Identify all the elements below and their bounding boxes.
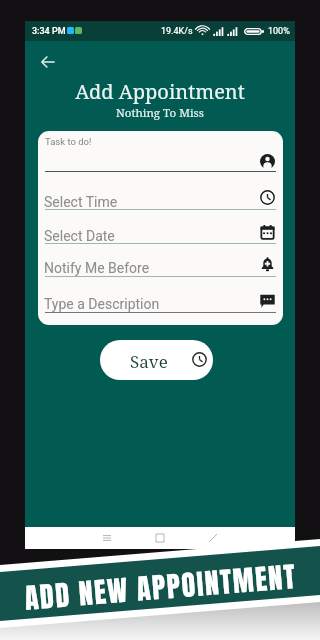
button[interactable]: Back bbox=[33, 47, 63, 77]
button[interactable]: Back bbox=[205, 530, 221, 546]
button[interactable]: Select time bbox=[258, 188, 276, 206]
staticText: Save bbox=[130, 350, 168, 373]
staticText: 3:34 PM bbox=[32, 26, 66, 37]
button[interactable]: Notify Me Before bbox=[44, 259, 249, 277]
button[interactable]: Description bbox=[258, 291, 276, 309]
staticText: ADD NEW APPOINTMENT bbox=[23, 555, 298, 617]
button[interactable]: Select Date bbox=[44, 227, 249, 245]
button[interactable]: Notify me bbox=[258, 255, 276, 273]
button[interactable]: Recents bbox=[99, 530, 115, 546]
button[interactable]: Select date bbox=[258, 223, 276, 241]
staticText: Select Time bbox=[44, 194, 118, 210]
button[interactable]: Save bbox=[100, 340, 213, 380]
staticText: Notify Me Before bbox=[44, 260, 150, 276]
staticText: 19.4K/s bbox=[161, 26, 193, 37]
button[interactable]: Account bbox=[258, 152, 276, 170]
staticText: Task to do! bbox=[45, 136, 92, 147]
staticText: Type a Description bbox=[44, 296, 160, 312]
staticText: Nothing To Miss bbox=[25, 105, 295, 121]
staticText: Add Appointment bbox=[25, 78, 295, 105]
staticText: Select Date bbox=[44, 228, 115, 244]
button[interactable]: Home bbox=[152, 530, 168, 546]
staticText: 100% bbox=[268, 26, 290, 37]
button[interactable]: Type a Description bbox=[44, 295, 249, 313]
button[interactable]: Select Time bbox=[44, 193, 249, 211]
